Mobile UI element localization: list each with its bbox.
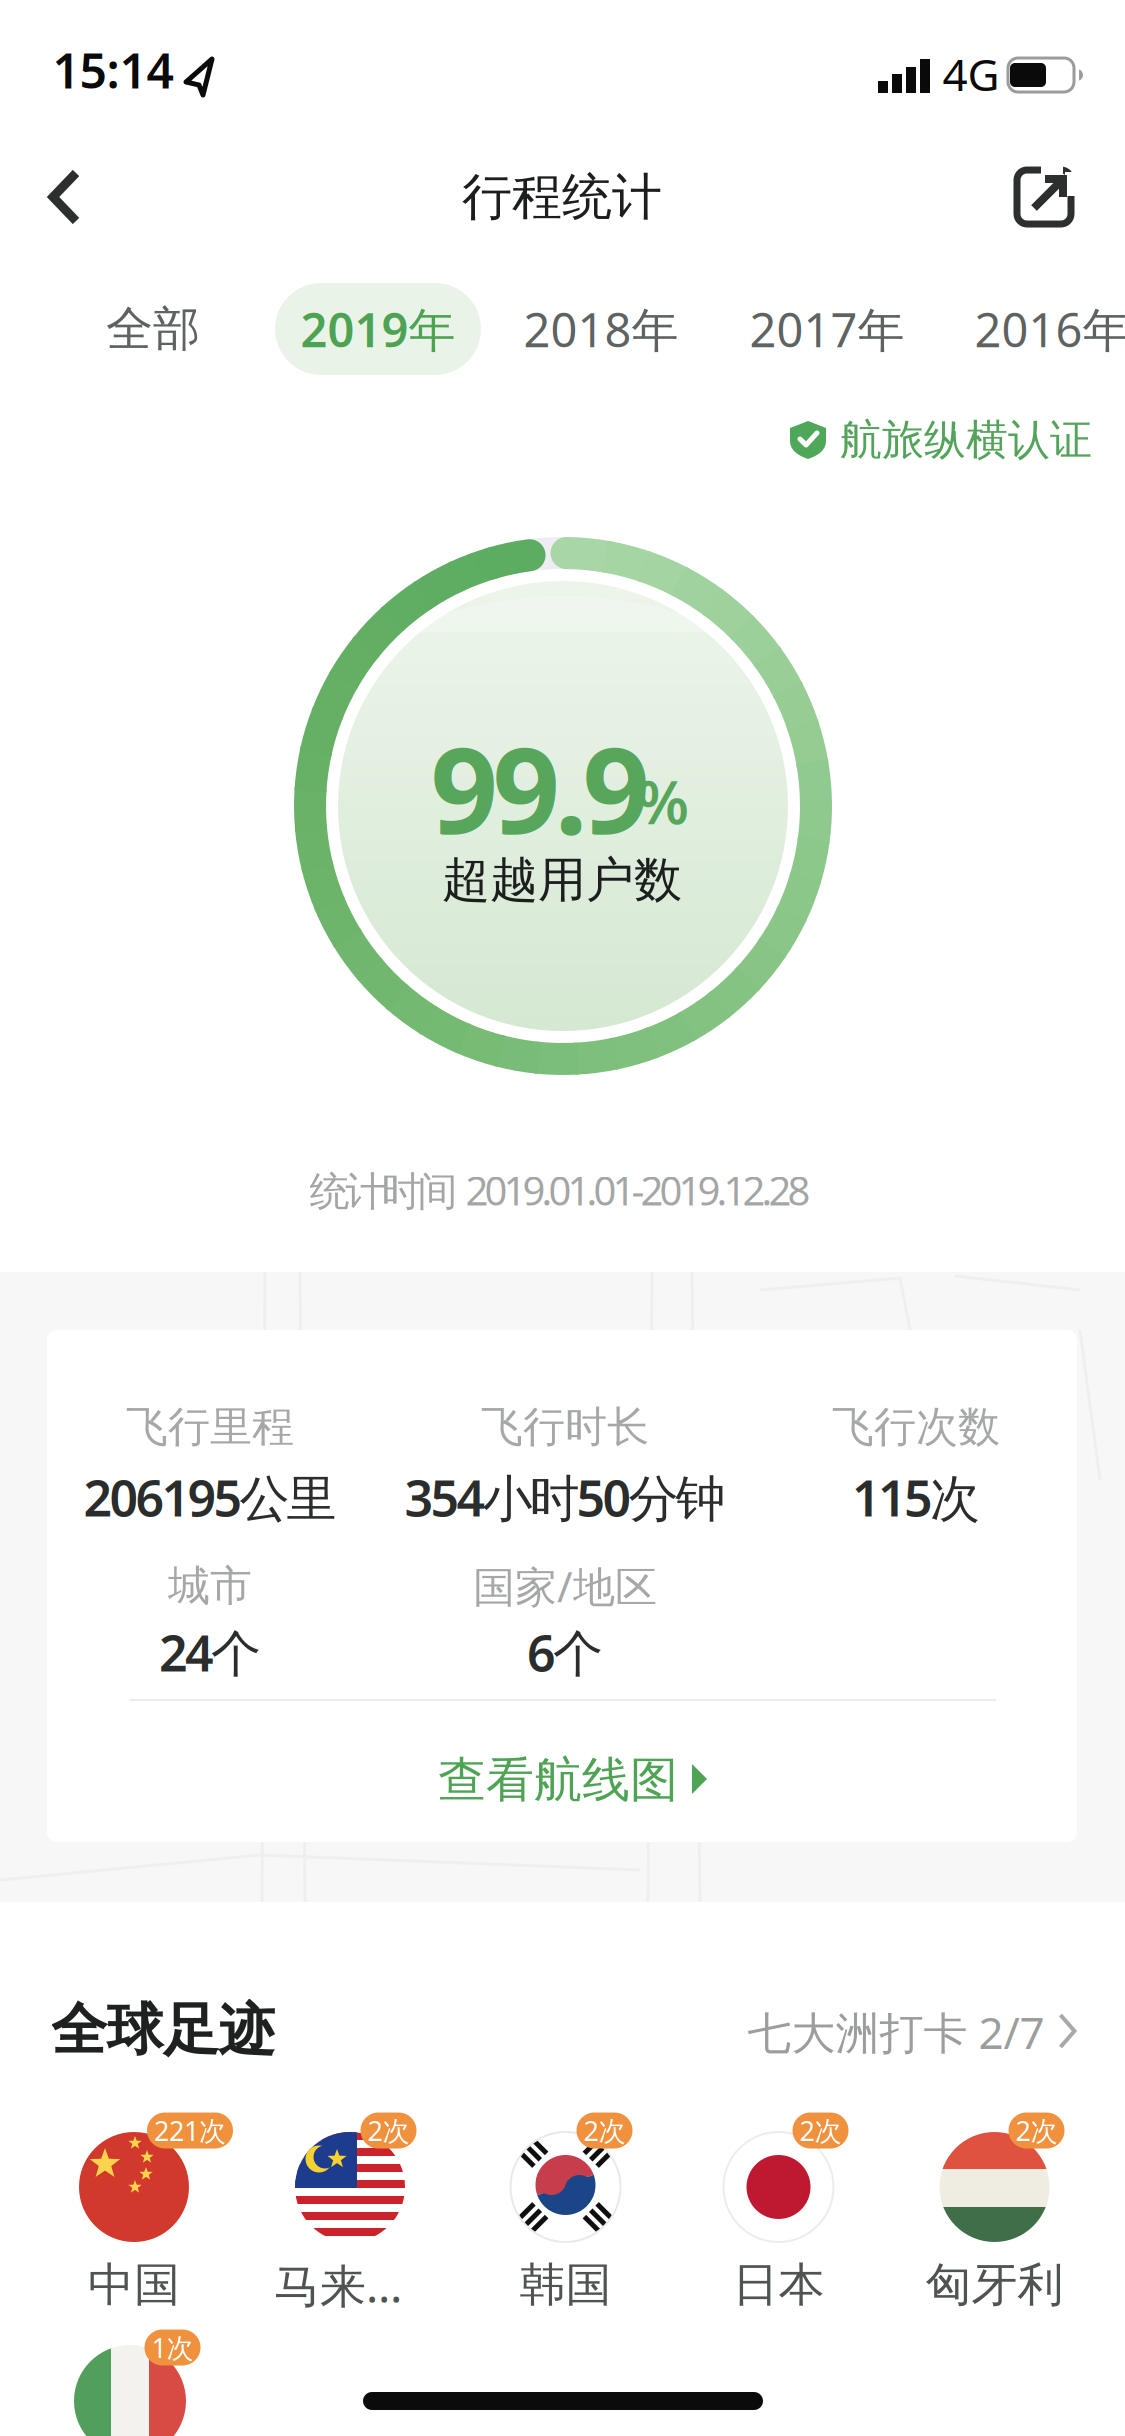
staticText: 2次 xyxy=(583,2113,625,2148)
button[interactable]: 马来西亚 xyxy=(295,2132,405,2242)
staticText: 2次 xyxy=(799,2113,841,2148)
staticText: 马来… xyxy=(274,2254,402,2316)
button[interactable]: 2017年 xyxy=(749,298,904,360)
staticText: 2018年 xyxy=(523,298,678,360)
staticText: 2次 xyxy=(1015,2113,1057,2148)
staticText: 2次 xyxy=(367,2113,409,2148)
button[interactable]: 中国 xyxy=(79,2132,189,2242)
button[interactable]: Back xyxy=(19,152,109,242)
staticText: 国家/地区 xyxy=(473,1558,657,1614)
staticText: 匈牙利 xyxy=(925,2257,1063,2313)
button[interactable]: 韩国 xyxy=(510,2132,620,2242)
staticText: 七大洲打卡 2/7 xyxy=(747,2003,1044,2061)
staticText: 206195公里 xyxy=(83,1464,336,1530)
staticText: 飞行时长 xyxy=(481,1401,649,1453)
button[interactable]: 日本 xyxy=(723,2132,833,2242)
staticText: 全部 xyxy=(106,300,200,358)
staticText: 全球足迹 xyxy=(51,1996,275,2064)
staticText: 行程统计 xyxy=(462,166,662,228)
staticText: 飞行次数 xyxy=(832,1401,1000,1453)
staticText: 221次 xyxy=(154,2113,226,2148)
button[interactable]: 2018年 xyxy=(523,298,678,360)
staticText: 统计时间 2019.01.01-2019.12.28 xyxy=(309,1163,810,1216)
button[interactable]: 航旅纵横认证 xyxy=(788,414,1092,466)
staticText: 中国 xyxy=(88,2257,180,2313)
button[interactable]: 查看航线图 xyxy=(438,1750,708,1809)
staticText: 2017年 xyxy=(749,298,904,360)
staticText: 韩国 xyxy=(519,2257,611,2313)
staticText: 1次 xyxy=(151,2330,193,2365)
staticText: 4G xyxy=(942,45,999,103)
button[interactable]: 意大利 xyxy=(74,2345,186,2436)
button[interactable]: 2016年 xyxy=(974,298,1125,360)
staticText: 354小时50分钟 xyxy=(404,1464,725,1530)
button[interactable]: 七大洲打卡 2/7 xyxy=(747,2003,1076,2061)
staticText: 飞行里程 xyxy=(126,1401,294,1453)
staticText: % xyxy=(636,761,689,841)
button[interactable]: Share xyxy=(999,152,1089,242)
staticText: 6个 xyxy=(527,1619,603,1685)
staticText: 115次 xyxy=(852,1464,980,1530)
staticText: 2016年 xyxy=(974,298,1125,360)
staticText: 24个 xyxy=(159,1619,261,1685)
staticText: 航旅纵横认证 xyxy=(840,414,1092,466)
staticText: 城市 xyxy=(168,1560,252,1612)
staticText: 15:14 xyxy=(52,38,173,102)
button[interactable]: 2019年 xyxy=(275,283,481,375)
staticText: 99.9 xyxy=(430,710,649,866)
button[interactable]: 全部 xyxy=(106,300,200,358)
staticText: 2019年 xyxy=(300,298,455,360)
button[interactable]: 匈牙利 xyxy=(939,2132,1049,2242)
staticText: 日本 xyxy=(732,2257,824,2313)
staticText: 超越用户数 xyxy=(442,850,682,909)
staticText: 查看航线图 xyxy=(438,1750,678,1809)
